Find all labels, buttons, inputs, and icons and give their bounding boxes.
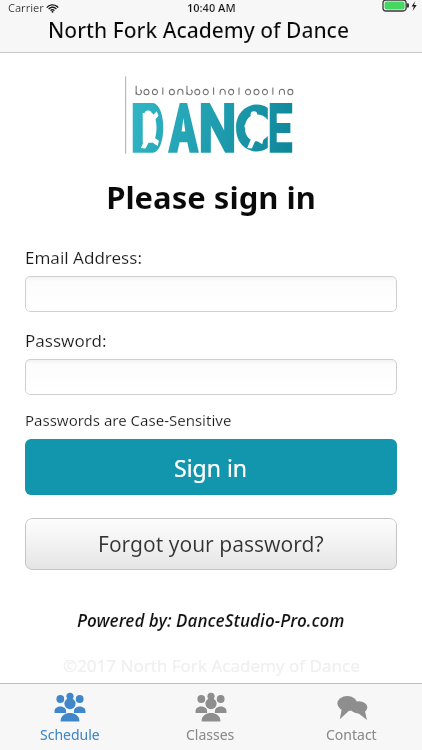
button[interactable]: Forgot your password? bbox=[25, 518, 397, 570]
staticText: Passwords are Case-Sensitive bbox=[25, 410, 232, 430]
staticText: Forgot your password? bbox=[98, 530, 324, 559]
staticText: Carrier bbox=[8, 0, 44, 15]
button[interactable]: Sign in bbox=[25, 439, 397, 495]
staticText: Please sign in bbox=[106, 176, 316, 218]
button[interactable] bbox=[25, 359, 397, 395]
staticText: Schedule bbox=[40, 725, 100, 744]
staticText: Sign in bbox=[174, 452, 248, 483]
staticText: 10:40 AM bbox=[187, 0, 236, 15]
staticText: Powered by: DanceStudio-Pro.com bbox=[77, 609, 345, 632]
staticText: ©2017 North Fork Academy of Dance bbox=[63, 654, 360, 677]
staticText: North Fork Academy of Dance bbox=[48, 16, 349, 45]
staticText: Password: bbox=[25, 329, 107, 352]
button[interactable]: Contact bbox=[281, 684, 422, 750]
staticText: Email Address: bbox=[25, 246, 142, 269]
button[interactable] bbox=[25, 276, 397, 312]
staticText: Contact bbox=[326, 725, 377, 744]
button[interactable]: Schedule bbox=[0, 684, 140, 750]
staticText: Classes bbox=[186, 725, 235, 744]
button[interactable]: Classes bbox=[140, 684, 281, 750]
